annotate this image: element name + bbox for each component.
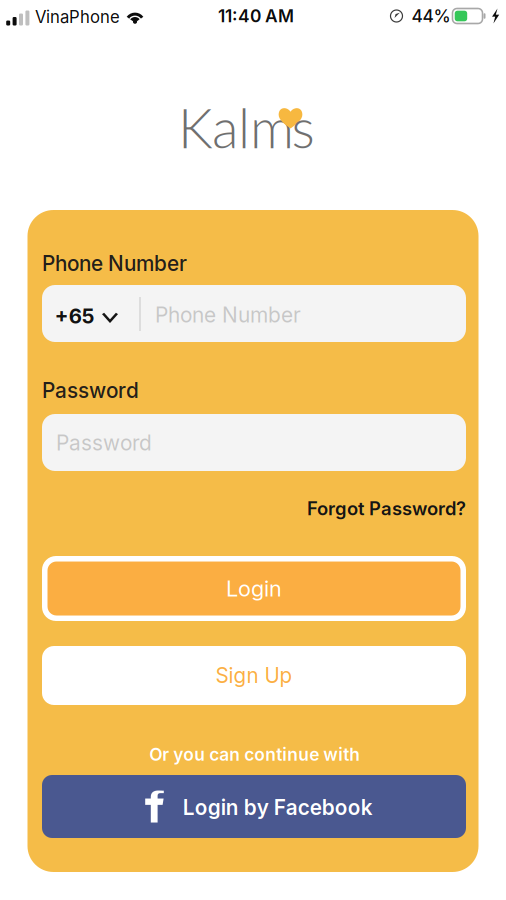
staticText: Password: [56, 430, 152, 456]
staticText: s: [291, 94, 314, 160]
button[interactable]: Sign Up: [42, 646, 466, 705]
staticText: Or you can continue with: [149, 744, 360, 765]
button[interactable]: Login: [42, 556, 466, 621]
staticText: +65: [55, 304, 95, 328]
staticText: Login by Facebook: [183, 795, 373, 820]
staticText: 44%: [411, 5, 450, 26]
staticText: Phone Number: [155, 302, 301, 328]
staticText: Password: [42, 378, 139, 403]
staticText: Sign Up: [215, 663, 292, 688]
staticText: Phone Number: [42, 251, 187, 276]
staticText: 11:40 AM: [218, 5, 294, 26]
button[interactable]: Forgot Password?: [291, 493, 466, 523]
staticText: Kalm: [178, 94, 294, 160]
button[interactable]: +65: [55, 285, 141, 342]
staticText: Login: [226, 575, 282, 602]
staticText: VinaPhone: [35, 7, 120, 27]
button[interactable]: Login by Facebook: [42, 775, 466, 838]
staticText: Forgot Password?: [307, 497, 466, 520]
